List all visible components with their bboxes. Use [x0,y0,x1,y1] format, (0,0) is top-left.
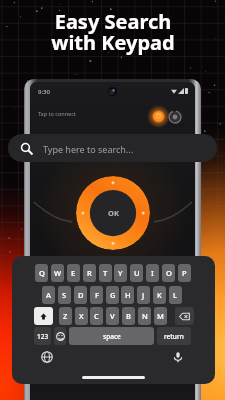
button[interactable]: I [146,264,159,282]
staticText: OK [108,208,119,218]
button[interactable]: space [69,327,154,345]
button[interactable]: L [169,286,182,304]
staticText: Easy Search with Keypad [51,8,175,56]
staticText: C [94,311,99,321]
button[interactable]: Change language [41,351,53,363]
button[interactable]: F [90,286,103,304]
button[interactable]: J [137,286,150,304]
staticText: 123 [37,332,49,341]
button[interactable]: Backspace [175,307,194,325]
staticText: 9:30 [38,88,50,96]
button[interactable]: B [122,307,135,325]
staticText: Q [39,268,45,278]
button[interactable]: Q [35,264,48,282]
button[interactable]: X [75,307,88,325]
button[interactable]: A [42,286,55,304]
button[interactable]: G [106,286,119,304]
staticText: M [157,311,164,321]
button[interactable]: Connect [147,105,170,128]
staticText: Tap to connect [38,110,76,117]
staticText: V [110,311,115,321]
staticText: E [71,268,76,278]
staticText: K [157,290,162,300]
staticText: I [151,268,154,278]
button[interactable]: 123 [34,327,51,345]
staticText: J [142,290,145,300]
staticText: F [95,290,99,300]
button[interactable]: N [138,307,151,325]
button[interactable]: E [67,264,80,282]
staticText: O [166,268,172,278]
staticText: A [46,290,51,300]
button[interactable]: Z [59,307,72,325]
button[interactable]: Y [114,264,127,282]
button[interactable]: return [157,327,191,345]
button[interactable]: V [106,307,119,325]
button[interactable]: R [83,264,96,282]
button[interactable]: M [154,307,167,325]
button[interactable]: Shift [34,307,53,325]
button[interactable]: Type here to search... [8,134,217,162]
button[interactable]: T [99,264,112,282]
button[interactable]: Emoji [54,327,66,345]
staticText: X [79,311,84,321]
staticText: return [164,332,184,341]
button[interactable]: S [58,286,71,304]
staticText: Type here to search... [43,143,134,155]
staticText: S [62,290,67,300]
staticText: space [103,332,121,341]
button[interactable]: K [153,286,166,304]
staticText: H [125,290,131,300]
staticText: U [134,268,140,278]
staticText: Z [63,311,68,321]
staticText: D [78,290,84,300]
staticText: R [87,268,92,278]
button[interactable]: W [51,264,64,282]
button[interactable]: Power [168,110,182,124]
staticText: G [110,290,116,300]
button[interactable]: D [74,286,87,304]
staticText: B [126,311,131,321]
button[interactable]: U [130,264,143,282]
staticText: L [173,290,178,300]
button[interactable]: H [121,286,134,304]
button[interactable]: OK [76,176,150,250]
staticText: Y [118,268,123,278]
button[interactable]: O [162,264,175,282]
staticText: P [182,268,187,278]
button[interactable]: C [90,307,103,325]
button[interactable]: P [178,264,191,282]
staticText: T [103,268,108,278]
staticText: N [142,311,148,321]
staticText: W [54,268,62,278]
button[interactable]: Voice input [172,351,184,363]
